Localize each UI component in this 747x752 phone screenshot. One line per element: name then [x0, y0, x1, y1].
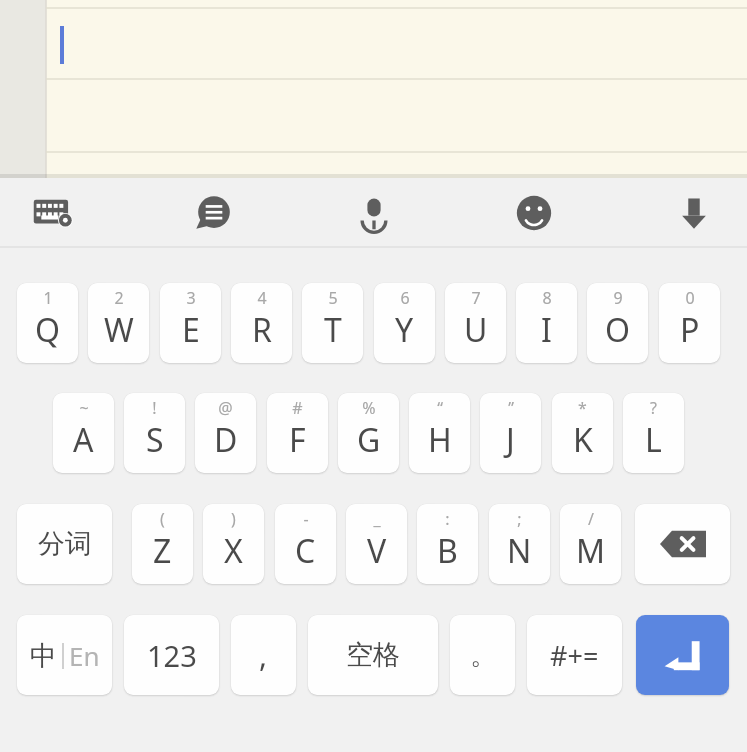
staticText: ~ — [79, 397, 89, 419]
staticText: ! — [152, 397, 157, 419]
staticText: , — [259, 635, 268, 676]
staticText: T — [324, 308, 342, 352]
button[interactable]: 123 — [124, 615, 219, 695]
staticText: 0 — [685, 287, 695, 309]
button[interactable]: “ — [409, 393, 470, 473]
staticText: En — [69, 638, 100, 673]
staticText: @ — [218, 397, 233, 419]
staticText: L — [645, 418, 662, 462]
staticText: 。 — [470, 639, 496, 672]
button[interactable]: ” — [480, 393, 541, 473]
staticText: X — [224, 529, 243, 573]
staticText: C — [295, 529, 316, 573]
staticText: E — [182, 308, 200, 352]
staticText: 4 — [257, 287, 267, 309]
staticText: “ — [437, 397, 443, 419]
staticText: ? — [650, 397, 657, 419]
staticText: 3 — [186, 287, 196, 309]
staticText: 空格 — [346, 638, 400, 672]
button[interactable]: , — [231, 615, 296, 695]
button[interactable]: #+= — [527, 615, 622, 695]
button[interactable]: 0 — [659, 283, 720, 363]
staticText: #+= — [550, 637, 599, 674]
button[interactable]: 2 — [88, 283, 149, 363]
staticText: P — [680, 308, 700, 352]
staticText: ; — [517, 508, 522, 530]
staticText: ( — [160, 508, 165, 530]
button[interactable]: ! — [124, 393, 185, 473]
button[interactable]: Keyboard settings — [20, 179, 88, 247]
button[interactable]: 。 — [450, 615, 515, 695]
button[interactable]: 6 — [374, 283, 435, 363]
button[interactable]: ) — [203, 504, 264, 584]
button[interactable]: % — [338, 393, 399, 473]
staticText: # — [292, 397, 303, 419]
button[interactable]: - — [275, 504, 336, 584]
button[interactable]: 5 — [302, 283, 363, 363]
staticText: ) — [231, 508, 236, 530]
staticText: 123 — [147, 636, 197, 675]
button[interactable]: 9 — [587, 283, 648, 363]
button[interactable]: Enter — [636, 615, 729, 695]
staticText: Z — [153, 529, 172, 573]
staticText: 中 — [30, 639, 57, 673]
staticText: D — [214, 418, 238, 462]
staticText: 5 — [328, 287, 338, 309]
staticText: 1 — [43, 287, 53, 309]
staticText: B — [437, 529, 458, 573]
button[interactable]: 8 — [516, 283, 577, 363]
button[interactable]: @ — [195, 393, 256, 473]
staticText: 7 — [471, 287, 481, 309]
staticText: U — [464, 308, 488, 352]
button[interactable]: ~ — [53, 393, 114, 473]
button[interactable]: Hide keyboard — [660, 179, 728, 247]
staticText: - — [303, 508, 309, 530]
staticText: 9 — [613, 287, 623, 309]
staticText: 2 — [114, 287, 124, 309]
button[interactable]: ? — [623, 393, 684, 473]
button[interactable]: Backspace — [635, 504, 730, 584]
button[interactable]: ; — [489, 504, 550, 584]
staticText: J — [506, 418, 515, 462]
button[interactable]: 分词 — [17, 504, 112, 584]
staticText: 8 — [542, 287, 552, 309]
button[interactable]: 7 — [445, 283, 506, 363]
staticText: V — [367, 529, 387, 573]
staticText: _ — [373, 508, 381, 530]
staticText: ” — [508, 397, 514, 419]
staticText: G — [357, 418, 381, 462]
staticText: A — [73, 418, 94, 462]
button[interactable]: 空格 — [308, 615, 438, 695]
staticText: O — [605, 308, 630, 352]
staticText: N — [507, 529, 532, 573]
button[interactable]: : — [417, 504, 478, 584]
staticText: % — [362, 397, 376, 419]
button[interactable]: 1 — [17, 283, 78, 363]
button[interactable]: 3 — [160, 283, 221, 363]
button[interactable]: Emoji — [500, 179, 568, 247]
staticText: K — [573, 418, 593, 462]
staticText: * — [578, 397, 587, 419]
button[interactable] — [0, 0, 747, 178]
button[interactable]: 中 — [17, 615, 112, 695]
staticText: W — [104, 308, 134, 352]
staticText: / — [588, 508, 594, 530]
button[interactable]: / — [560, 504, 621, 584]
button[interactable]: # — [267, 393, 328, 473]
staticText: F — [289, 418, 306, 462]
button[interactable]: Conversation — [180, 179, 248, 247]
button[interactable]: _ — [346, 504, 407, 584]
staticText: Q — [35, 308, 60, 352]
staticText: R — [252, 308, 272, 352]
staticText: 6 — [400, 287, 410, 309]
staticText: M — [576, 529, 606, 573]
button[interactable]: ( — [132, 504, 193, 584]
staticText: S — [146, 418, 164, 462]
staticText: H — [428, 418, 452, 462]
staticText: Y — [395, 308, 414, 352]
staticText: 分词 — [38, 527, 92, 561]
staticText: : — [445, 508, 450, 530]
button[interactable]: 4 — [231, 283, 292, 363]
button[interactable]: * — [552, 393, 613, 473]
button[interactable]: Voice input — [340, 179, 408, 247]
